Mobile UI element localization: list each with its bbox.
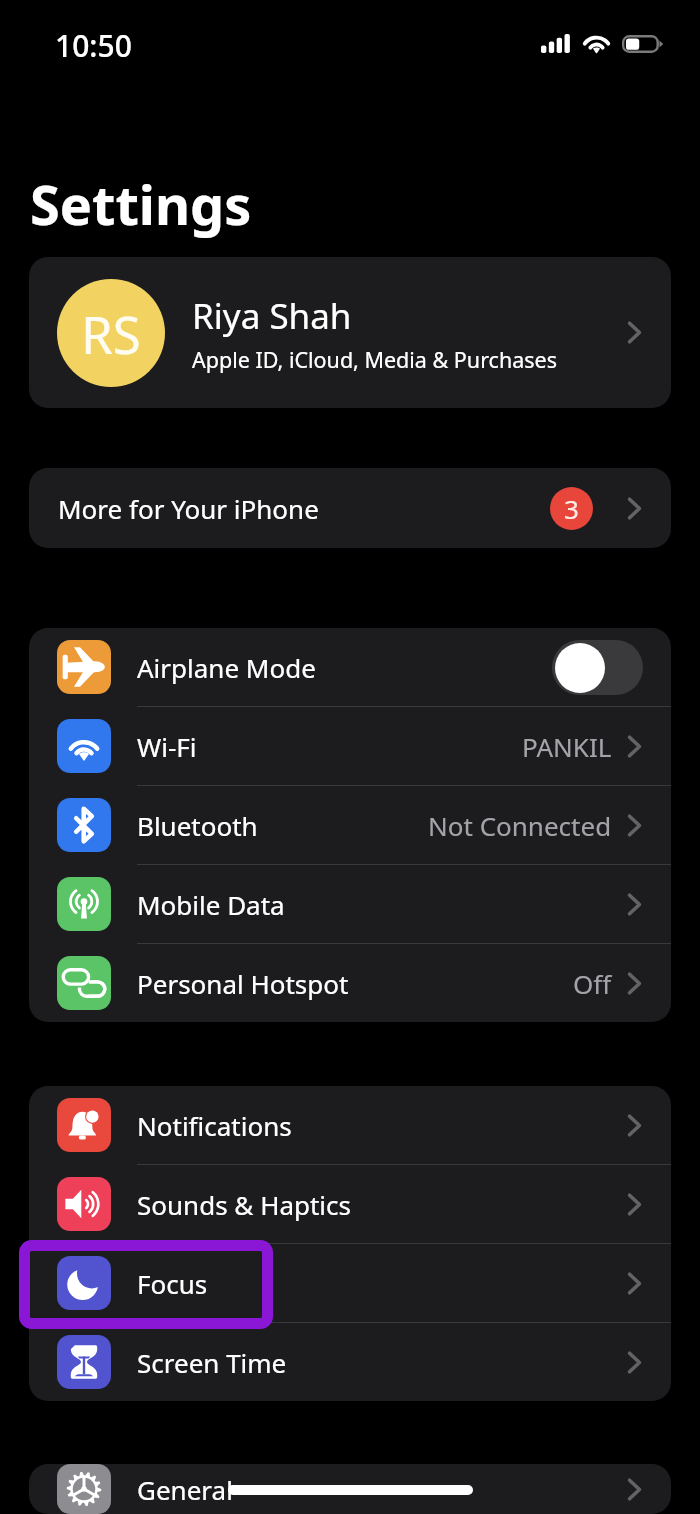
staticText: Settings bbox=[30, 167, 252, 241]
staticText: General bbox=[137, 1472, 233, 1507]
button[interactable]: Wi-Fi bbox=[29, 707, 671, 785]
staticText: Airplane Mode bbox=[137, 650, 316, 685]
staticText: Off bbox=[573, 966, 612, 1001]
staticText: Wi-Fi bbox=[137, 729, 197, 764]
button[interactable]: Bluetooth bbox=[29, 786, 671, 864]
staticText: 3 bbox=[564, 491, 579, 526]
button[interactable]: Focus bbox=[29, 1244, 671, 1322]
button[interactable]: RS bbox=[29, 257, 671, 408]
staticText: Personal Hotspot bbox=[137, 966, 349, 1001]
button[interactable]: Airplane Mode bbox=[29, 628, 671, 706]
staticText: PANKIL bbox=[522, 729, 612, 764]
staticText: Focus bbox=[137, 1266, 208, 1301]
staticText: Notifications bbox=[137, 1108, 292, 1143]
staticText: 10:50 bbox=[55, 25, 132, 66]
staticText: RS bbox=[81, 299, 141, 368]
button[interactable]: Screen Time bbox=[29, 1323, 671, 1401]
staticText: Bluetooth bbox=[137, 808, 258, 843]
button[interactable]: Mobile Data bbox=[29, 865, 671, 943]
staticText: Screen Time bbox=[137, 1345, 287, 1380]
staticText: More for Your iPhone bbox=[58, 491, 319, 526]
staticText: Mobile Data bbox=[137, 887, 285, 922]
button[interactable]: Notifications bbox=[29, 1086, 671, 1164]
staticText: Sounds & Haptics bbox=[137, 1187, 352, 1222]
staticText: Apple ID, iCloud, Media & Purchases bbox=[192, 345, 557, 374]
button[interactable]: More for Your iPhone bbox=[29, 468, 671, 548]
button[interactable]: General bbox=[29, 1464, 671, 1514]
button[interactable]: Personal Hotspot bbox=[29, 944, 671, 1022]
button[interactable]: Toggle Airplane Mode bbox=[552, 640, 643, 695]
staticText: Riya Shah bbox=[192, 292, 352, 340]
staticText: Not Connected bbox=[428, 808, 612, 843]
button[interactable]: Sounds & Haptics bbox=[29, 1165, 671, 1243]
